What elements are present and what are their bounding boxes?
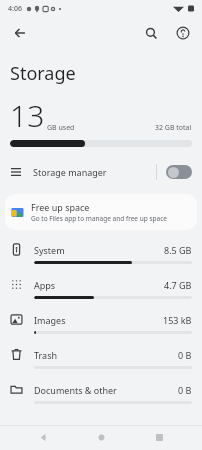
button[interactable]: Home [86, 425, 116, 450]
staticText: GB used [47, 123, 75, 133]
button[interactable]: Recent apps [144, 425, 174, 450]
button[interactable]: Back [5, 18, 35, 48]
staticText: Trash [34, 349, 58, 361]
staticText: 8.5 GB [164, 244, 192, 256]
button[interactable]: System [0, 236, 202, 271]
staticText: 32 GB total [155, 123, 192, 133]
staticText: System [34, 244, 65, 256]
staticText: Apps [34, 279, 56, 291]
button[interactable]: Apps [0, 271, 202, 306]
staticText: 4:06 [8, 4, 22, 14]
staticText: Storage manager [33, 166, 107, 178]
staticText: 4.7 GB [164, 279, 192, 291]
button[interactable]: Free up space [5, 194, 197, 230]
staticText: 13 [10, 95, 45, 136]
button[interactable]: Back [28, 425, 58, 450]
staticText: 0 B [178, 349, 192, 361]
staticText: 0 B [178, 384, 192, 396]
button[interactable]: Storage manager [0, 157, 202, 187]
staticText: Documents & other [34, 384, 117, 396]
staticText: 153 kB [163, 314, 192, 326]
staticText: Go to Files app to manage and free up sp… [31, 214, 167, 223]
staticText: Free up space [31, 201, 90, 213]
button[interactable]: Documents & other [0, 376, 202, 411]
button[interactable]: Help [169, 19, 197, 47]
button[interactable]: Storage manager toggle, off [166, 165, 192, 179]
button[interactable]: Trash [0, 341, 202, 376]
staticText: Images [34, 314, 66, 326]
button[interactable]: Search [137, 19, 165, 47]
button[interactable]: Images [0, 306, 202, 341]
staticText: Storage [10, 61, 76, 86]
